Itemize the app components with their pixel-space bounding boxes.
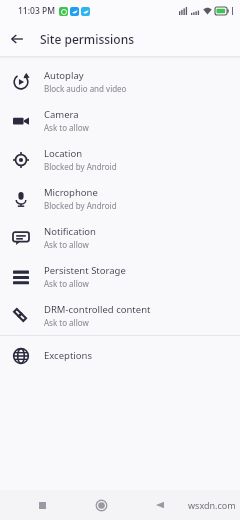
button[interactable]: Exceptions bbox=[0, 336, 240, 375]
staticText: Blocked by Android bbox=[44, 200, 117, 211]
staticText: Notification bbox=[44, 225, 96, 238]
staticText: Persistent Storage bbox=[44, 264, 126, 277]
staticText: 11:03 PM bbox=[18, 5, 55, 17]
staticText: Site permissions bbox=[40, 31, 135, 47]
button[interactable]: Notification bbox=[0, 218, 240, 257]
button[interactable]: Camera bbox=[0, 101, 240, 140]
staticText: Ask to allow bbox=[44, 278, 89, 289]
staticText: Ask to allow bbox=[44, 239, 89, 250]
staticText: Ask to allow bbox=[44, 122, 89, 133]
staticText: Autoplay bbox=[44, 69, 84, 82]
staticText: DRM-controlled content bbox=[44, 303, 151, 316]
button[interactable]: Persistent Storage bbox=[0, 257, 240, 296]
staticText: wsxdn.com bbox=[188, 499, 236, 511]
button[interactable]: Home bbox=[86, 490, 116, 520]
button[interactable]: DRM-controlled content bbox=[0, 296, 240, 335]
staticText: Block audio and video bbox=[44, 83, 127, 94]
staticText: Location bbox=[44, 147, 83, 160]
button[interactable]: Recents bbox=[27, 490, 57, 520]
button[interactable]: Location bbox=[0, 140, 240, 179]
staticText: Microphone bbox=[44, 186, 98, 199]
staticText: Camera bbox=[44, 108, 79, 121]
staticText: Exceptions bbox=[44, 349, 92, 362]
staticText: Blocked by Android bbox=[44, 161, 117, 172]
button[interactable]: Microphone bbox=[0, 179, 240, 218]
button[interactable]: Back bbox=[145, 490, 175, 520]
button[interactable]: Back bbox=[0, 22, 34, 56]
staticText: Ask to allow bbox=[44, 317, 89, 328]
button[interactable]: Autoplay bbox=[0, 62, 240, 101]
